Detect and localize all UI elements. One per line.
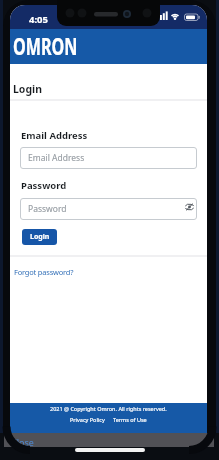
staticText: 2021 @ Copyright Omron. All rights reser… xyxy=(50,405,167,412)
staticText: Login xyxy=(13,82,43,96)
staticText: 4:05 xyxy=(29,13,48,26)
button[interactable]: Password xyxy=(20,198,197,220)
button[interactable]: Terms of Use xyxy=(113,416,147,423)
button[interactable]: Login xyxy=(22,229,57,245)
staticText: Email Address xyxy=(28,152,85,164)
staticText: Email Address xyxy=(21,129,88,142)
button[interactable]: Close xyxy=(11,436,34,448)
staticText: Login xyxy=(30,232,50,242)
button[interactable]: Forgot password? xyxy=(14,267,74,277)
button[interactable]: Privacy Policy xyxy=(70,416,105,423)
staticText: OMRON xyxy=(13,31,78,62)
button[interactable]: Email Address xyxy=(20,147,197,169)
staticText: Password xyxy=(28,203,67,215)
staticText: Password xyxy=(21,179,67,192)
